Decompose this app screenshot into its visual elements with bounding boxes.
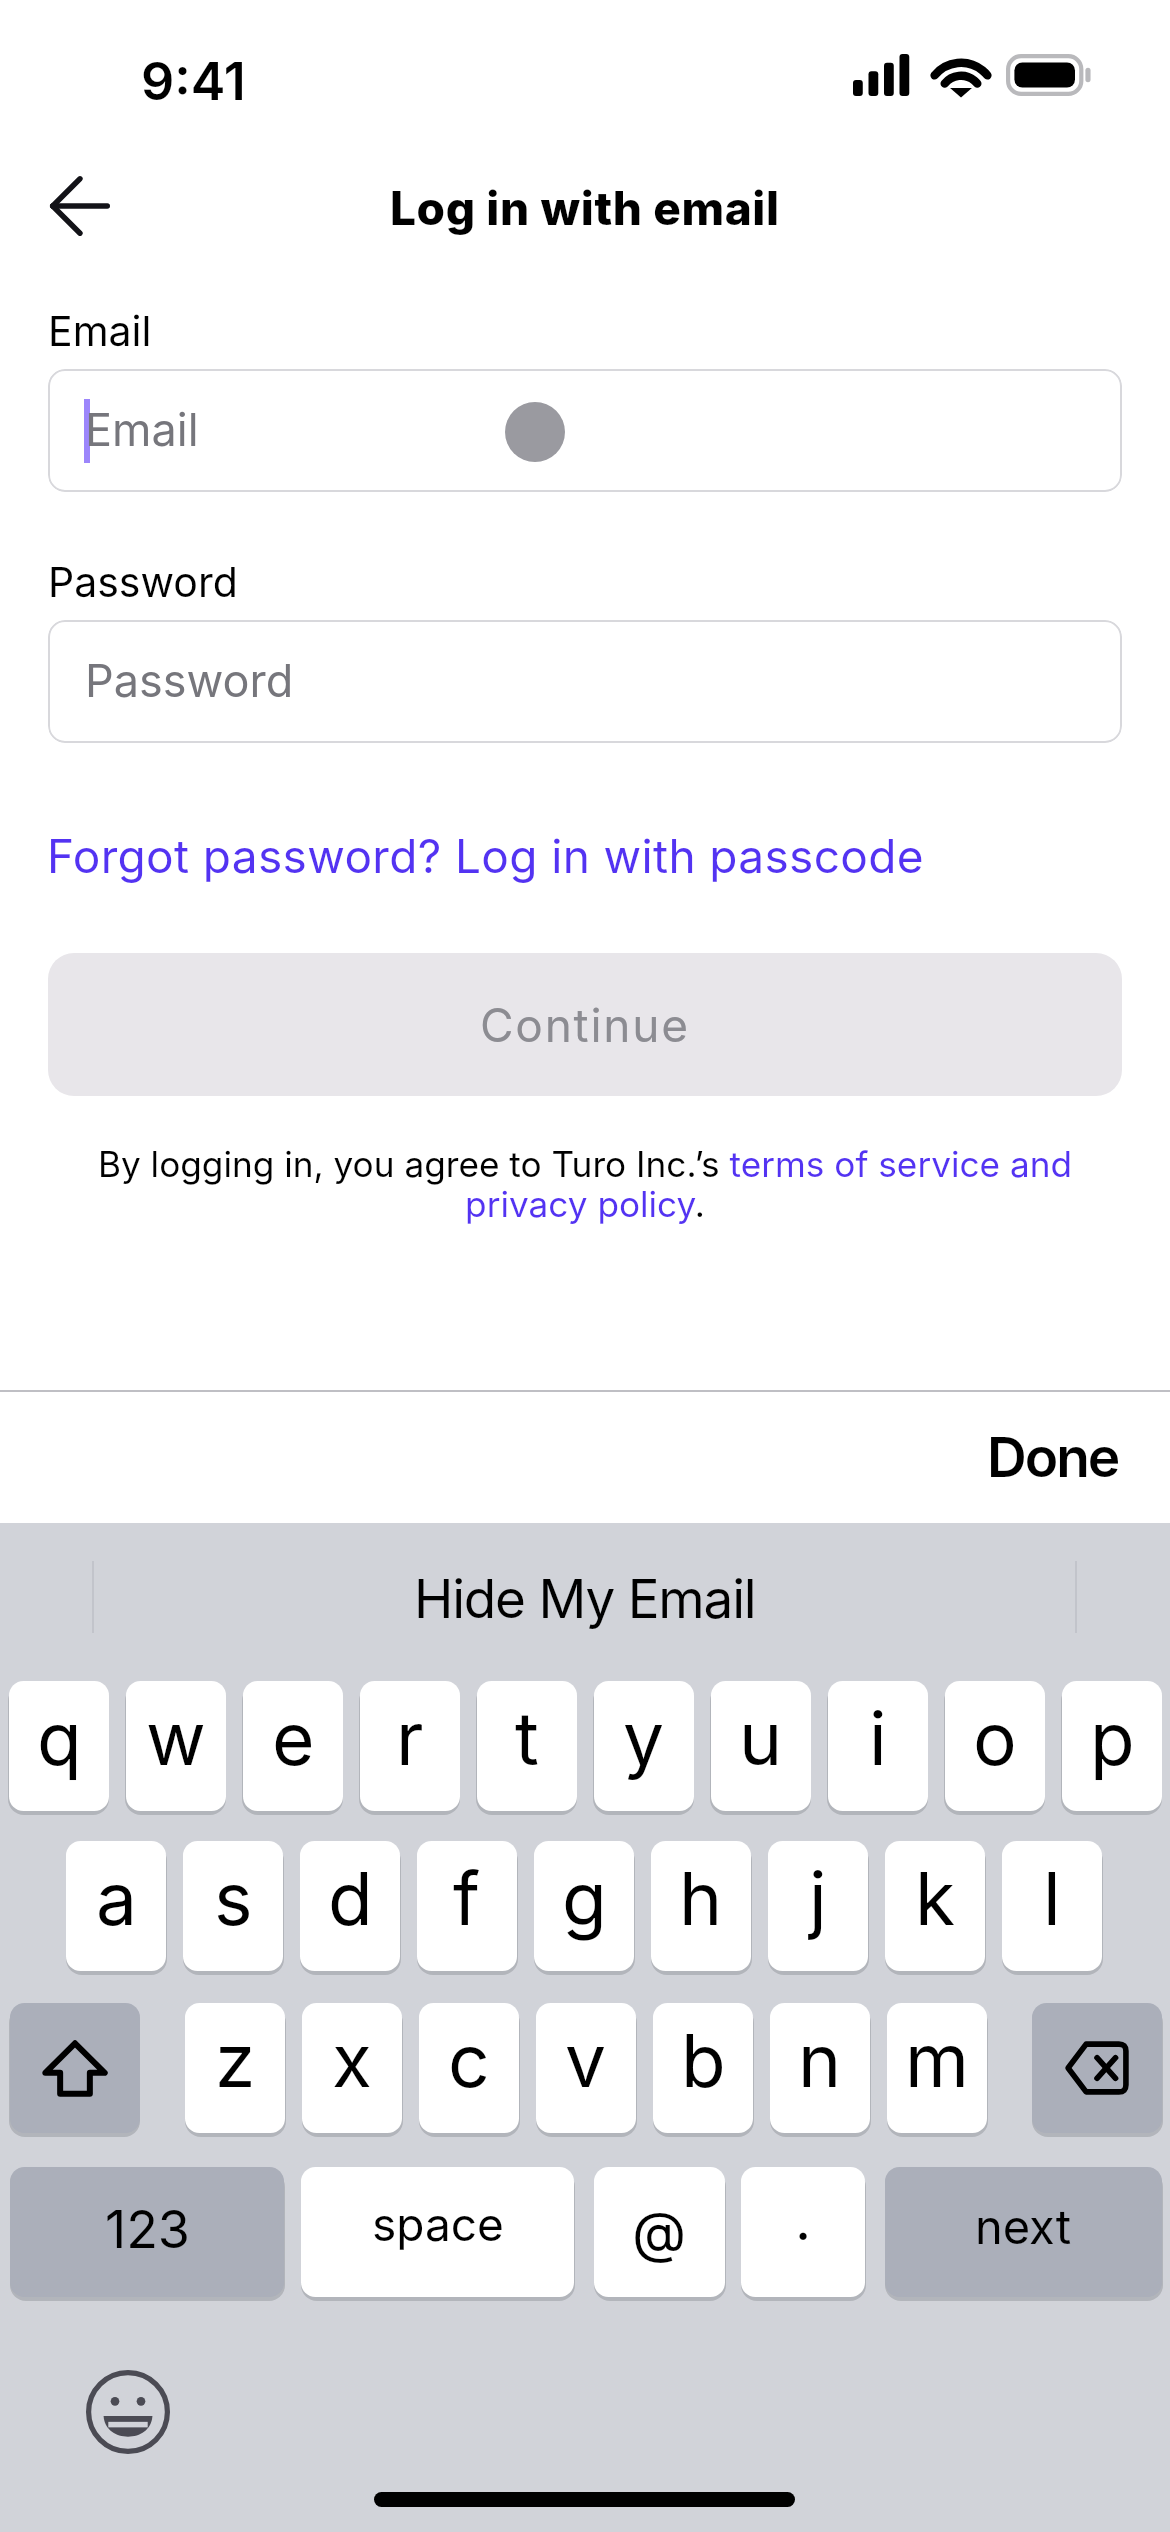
- staticText: k: [915, 1854, 956, 1942]
- staticText: Done: [987, 1424, 1119, 1491]
- staticText: Log in with email: [390, 180, 780, 236]
- button[interactable]: Continue: [48, 953, 1122, 1096]
- button[interactable]: @: [594, 2167, 725, 2297]
- button[interactable]: y: [594, 1681, 694, 1811]
- button[interactable]: l: [1002, 1841, 1102, 1971]
- button[interactable]: t: [477, 1681, 577, 1811]
- button[interactable]: space: [301, 2167, 574, 2297]
- staticText: f: [453, 1854, 481, 1942]
- staticText: u: [739, 1694, 783, 1782]
- button[interactable]: b: [653, 2003, 753, 2133]
- staticText: c: [448, 2016, 490, 2104]
- button[interactable]: h: [651, 1841, 751, 1971]
- staticText: Email: [85, 402, 199, 456]
- button[interactable]: d: [300, 1841, 400, 1971]
- button[interactable]: k: [885, 1841, 985, 1971]
- button[interactable]: c: [419, 2003, 519, 2133]
- button[interactable]: Email: [48, 369, 1122, 492]
- staticText: y: [623, 1694, 665, 1782]
- button[interactable]: n: [770, 2003, 870, 2133]
- staticText: q: [37, 1694, 82, 1782]
- staticText: 9:41: [141, 50, 246, 113]
- button[interactable]: Backspace: [1032, 2003, 1162, 2133]
- staticText: Password: [48, 557, 238, 607]
- button[interactable]: Back: [24, 160, 136, 252]
- staticText: a: [96, 1854, 137, 1942]
- staticText: j: [809, 1854, 827, 1942]
- button[interactable]: m: [887, 2003, 987, 2133]
- staticText: p: [1090, 1694, 1135, 1782]
- staticText: space: [372, 2196, 504, 2252]
- staticText: 123: [105, 2198, 190, 2261]
- staticText: .: [795, 2186, 812, 2254]
- staticText: d: [328, 1854, 373, 1942]
- button[interactable]: w: [126, 1681, 226, 1811]
- staticText: e: [272, 1694, 315, 1782]
- button[interactable]: o: [945, 1681, 1045, 1811]
- staticText: v: [565, 2016, 607, 2104]
- staticText: z: [215, 2016, 256, 2104]
- button[interactable]: u: [711, 1681, 811, 1811]
- button[interactable]: Emoji keyboard: [78, 2362, 178, 2462]
- button[interactable]: Password: [48, 620, 1122, 743]
- staticText: r: [396, 1694, 424, 1782]
- staticText: Password: [85, 653, 294, 707]
- staticText: Hide My Email: [414, 1567, 756, 1631]
- staticText: @: [632, 2198, 687, 2266]
- button[interactable]: e: [243, 1681, 343, 1811]
- staticText: m: [905, 2016, 969, 2104]
- staticText: Forgot password? Log in with passcode: [47, 828, 924, 884]
- staticText: h: [679, 1854, 723, 1942]
- button[interactable]: f: [417, 1841, 517, 1971]
- button[interactable]: Forgot password? Log in with passcode: [40, 820, 931, 892]
- button[interactable]: a: [66, 1841, 166, 1971]
- staticText: n: [798, 2016, 842, 2104]
- staticText: l: [1043, 1854, 1061, 1942]
- button[interactable]: v: [536, 2003, 636, 2133]
- button[interactable]: q: [9, 1681, 109, 1811]
- staticText: x: [332, 2016, 372, 2104]
- button[interactable]: Done: [963, 1410, 1143, 1505]
- staticText: g: [562, 1854, 607, 1942]
- staticText: Email: [48, 306, 152, 356]
- button[interactable]: 123: [10, 2167, 284, 2297]
- button[interactable]: s: [183, 1841, 283, 1971]
- button[interactable]: p: [1062, 1681, 1162, 1811]
- staticText: By logging in, you agree to Turo Inc.’s …: [55, 1143, 1115, 1226]
- button[interactable]: next: [885, 2167, 1162, 2297]
- staticText: w: [146, 1694, 206, 1782]
- button[interactable]: g: [534, 1841, 634, 1971]
- button[interactable]: .: [741, 2167, 865, 2297]
- staticText: s: [214, 1854, 253, 1942]
- button[interactable]: r: [360, 1681, 460, 1811]
- button[interactable]: i: [828, 1681, 928, 1811]
- staticText: i: [869, 1694, 887, 1782]
- button[interactable]: Shift: [10, 2003, 140, 2133]
- button[interactable]: By logging in, you agree to Turo Inc.’s …: [55, 1143, 1115, 1226]
- staticText: o: [973, 1694, 1017, 1782]
- staticText: t: [515, 1694, 539, 1782]
- button[interactable]: z: [185, 2003, 285, 2133]
- staticText: Continue: [480, 997, 690, 1053]
- staticText: b: [681, 2016, 726, 2104]
- staticText: next: [975, 2198, 1072, 2255]
- button[interactable]: j: [768, 1841, 868, 1971]
- button[interactable]: x: [302, 2003, 402, 2133]
